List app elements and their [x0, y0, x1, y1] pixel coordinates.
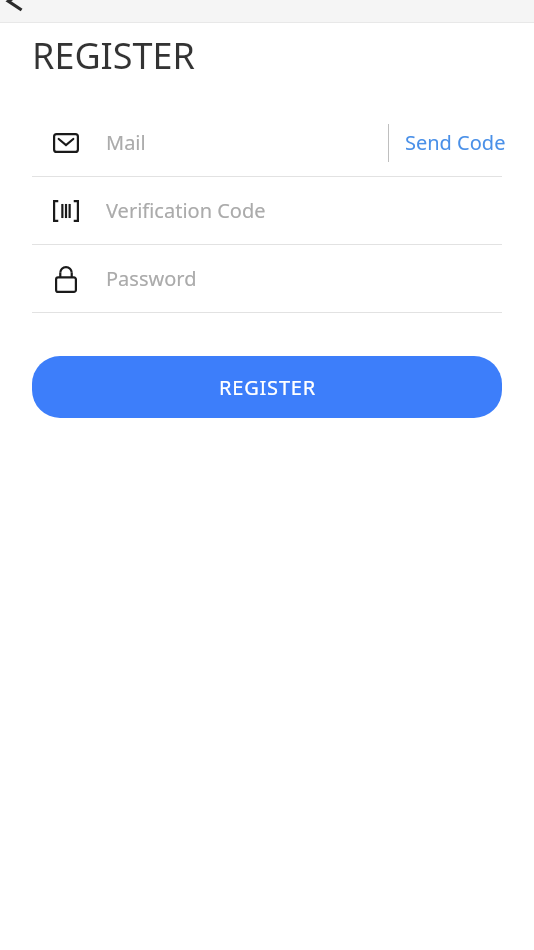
button[interactable]: Password: [32, 245, 534, 312]
staticText: Send Code: [405, 129, 506, 156]
button[interactable]: Back: [0, 0, 30, 14]
button[interactable]: Send Code: [389, 121, 534, 164]
button[interactable]: REGISTER: [32, 356, 502, 418]
staticText: Mail: [106, 129, 388, 156]
staticText: REGISTER: [219, 374, 316, 401]
button[interactable]: Verification Code: [32, 177, 534, 244]
button[interactable]: Mail: [32, 109, 534, 176]
staticText: Verification Code: [106, 197, 534, 224]
staticText: Password: [106, 265, 534, 292]
staticText: REGISTER: [32, 31, 196, 80]
